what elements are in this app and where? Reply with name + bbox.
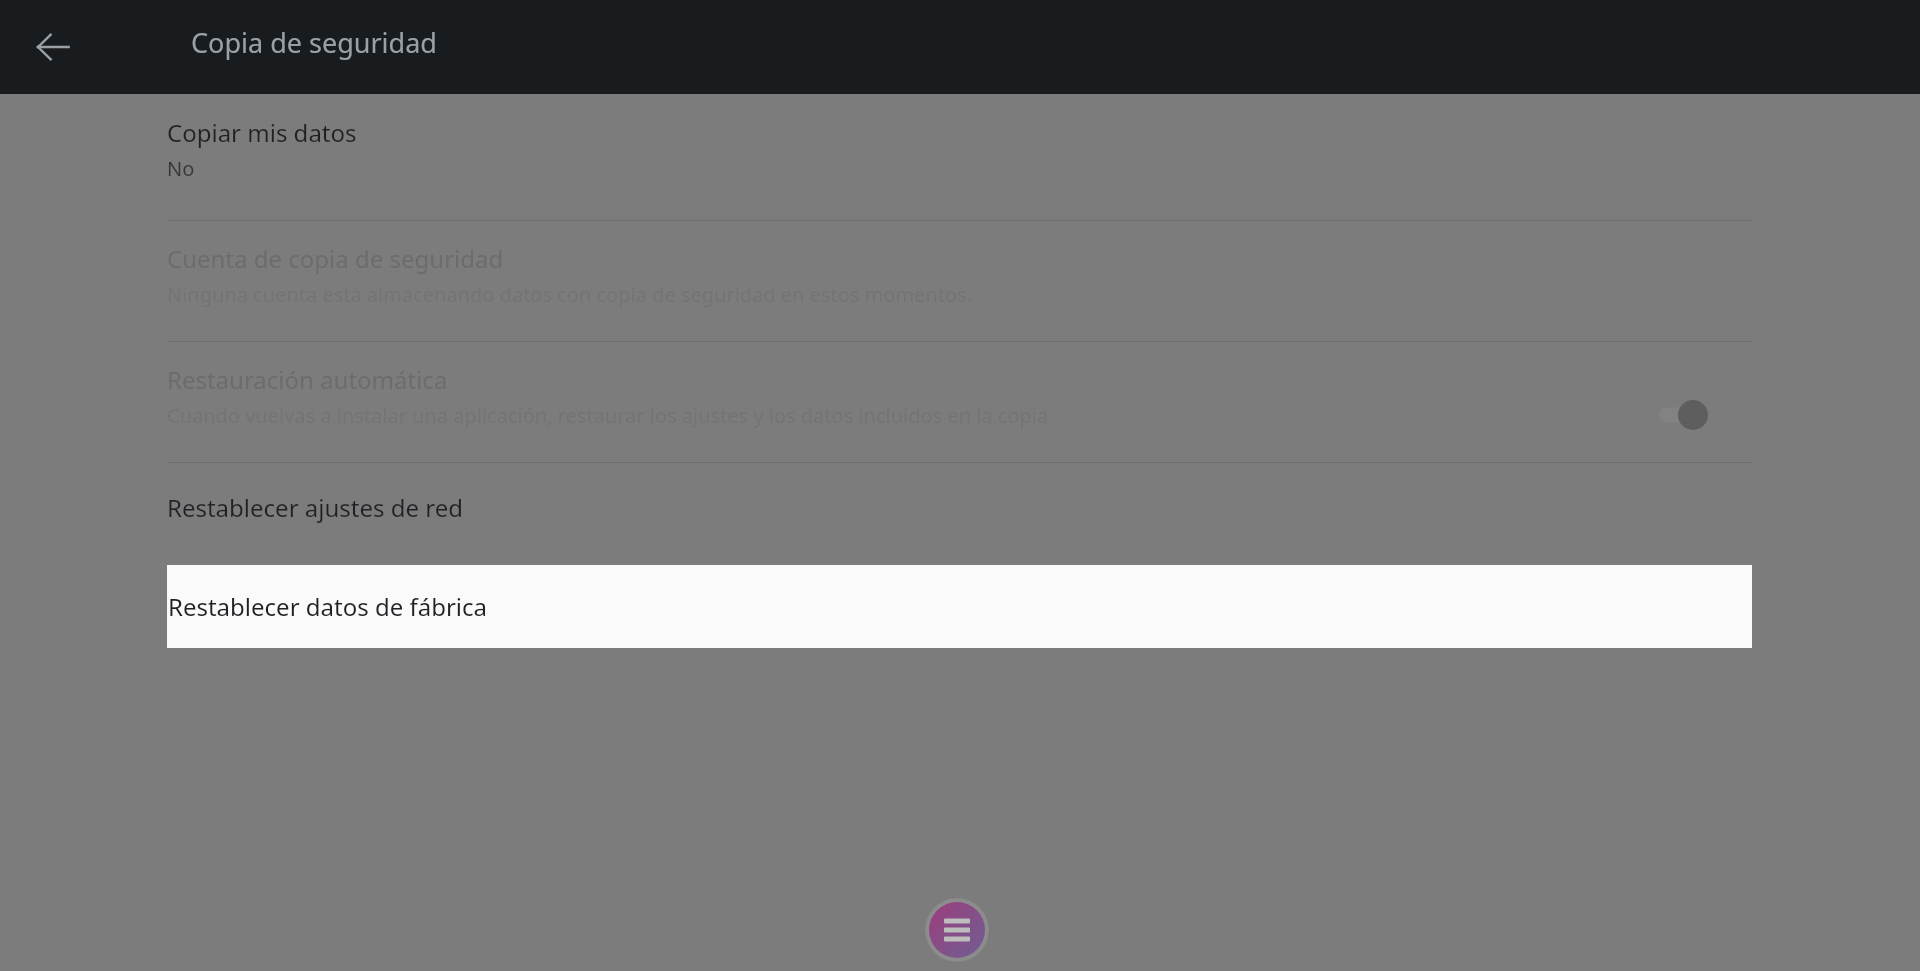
staticText: Restablecer ajustes de red (167, 491, 463, 524)
button[interactable]: Copiar mis datos (0, 94, 1920, 220)
staticText: Cuenta de copia de seguridad (167, 242, 504, 275)
button[interactable]: Back (20, 14, 86, 80)
staticText: Copia de seguridad (191, 24, 437, 61)
other: Restauración automática toggle (1655, 393, 1717, 437)
button[interactable]: Restablecer datos de fábrica (167, 565, 1752, 648)
staticText: Restablecer datos de fábrica (168, 590, 488, 623)
staticText: Restauración automática (167, 363, 448, 396)
staticText: No (167, 155, 195, 182)
button[interactable]: Menu (925, 898, 989, 962)
button[interactable]: Restablecer ajustes de red (0, 463, 1920, 552)
staticText: Copiar mis datos (167, 116, 357, 149)
